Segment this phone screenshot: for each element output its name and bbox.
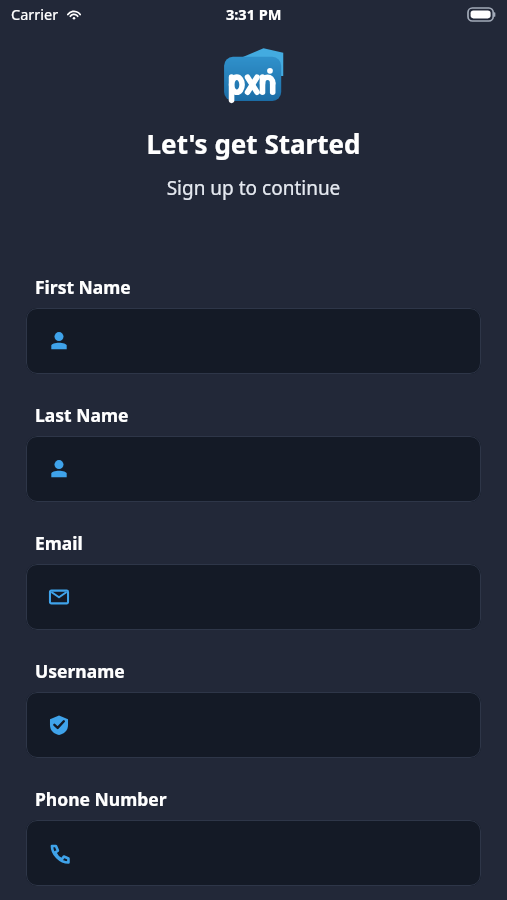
staticText: Sign up to continue	[0, 175, 507, 201]
staticText: Last Name	[35, 403, 129, 427]
staticText: Let's get Started	[0, 126, 507, 161]
other: Phone	[48, 842, 70, 864]
other: Secure	[48, 714, 70, 736]
other: Email	[48, 586, 70, 608]
other: Battery full	[468, 8, 496, 21]
other: Person	[48, 330, 70, 352]
staticText: Username	[35, 659, 125, 683]
button[interactable]: Email	[26, 564, 481, 630]
staticText: Email	[35, 531, 83, 555]
button[interactable]: Phone	[26, 820, 481, 886]
other: pxn logo	[220, 47, 288, 105]
other: Wi-Fi	[66, 8, 82, 20]
staticText: 3:31 PM	[226, 4, 282, 24]
staticText: First Name	[35, 275, 131, 299]
button[interactable]: Person	[26, 436, 481, 502]
other: Person	[48, 458, 70, 480]
staticText: Phone Number	[35, 787, 167, 811]
button[interactable]: Secure	[26, 692, 481, 758]
staticText: Carrier	[11, 4, 59, 24]
button[interactable]: Person	[26, 308, 481, 374]
